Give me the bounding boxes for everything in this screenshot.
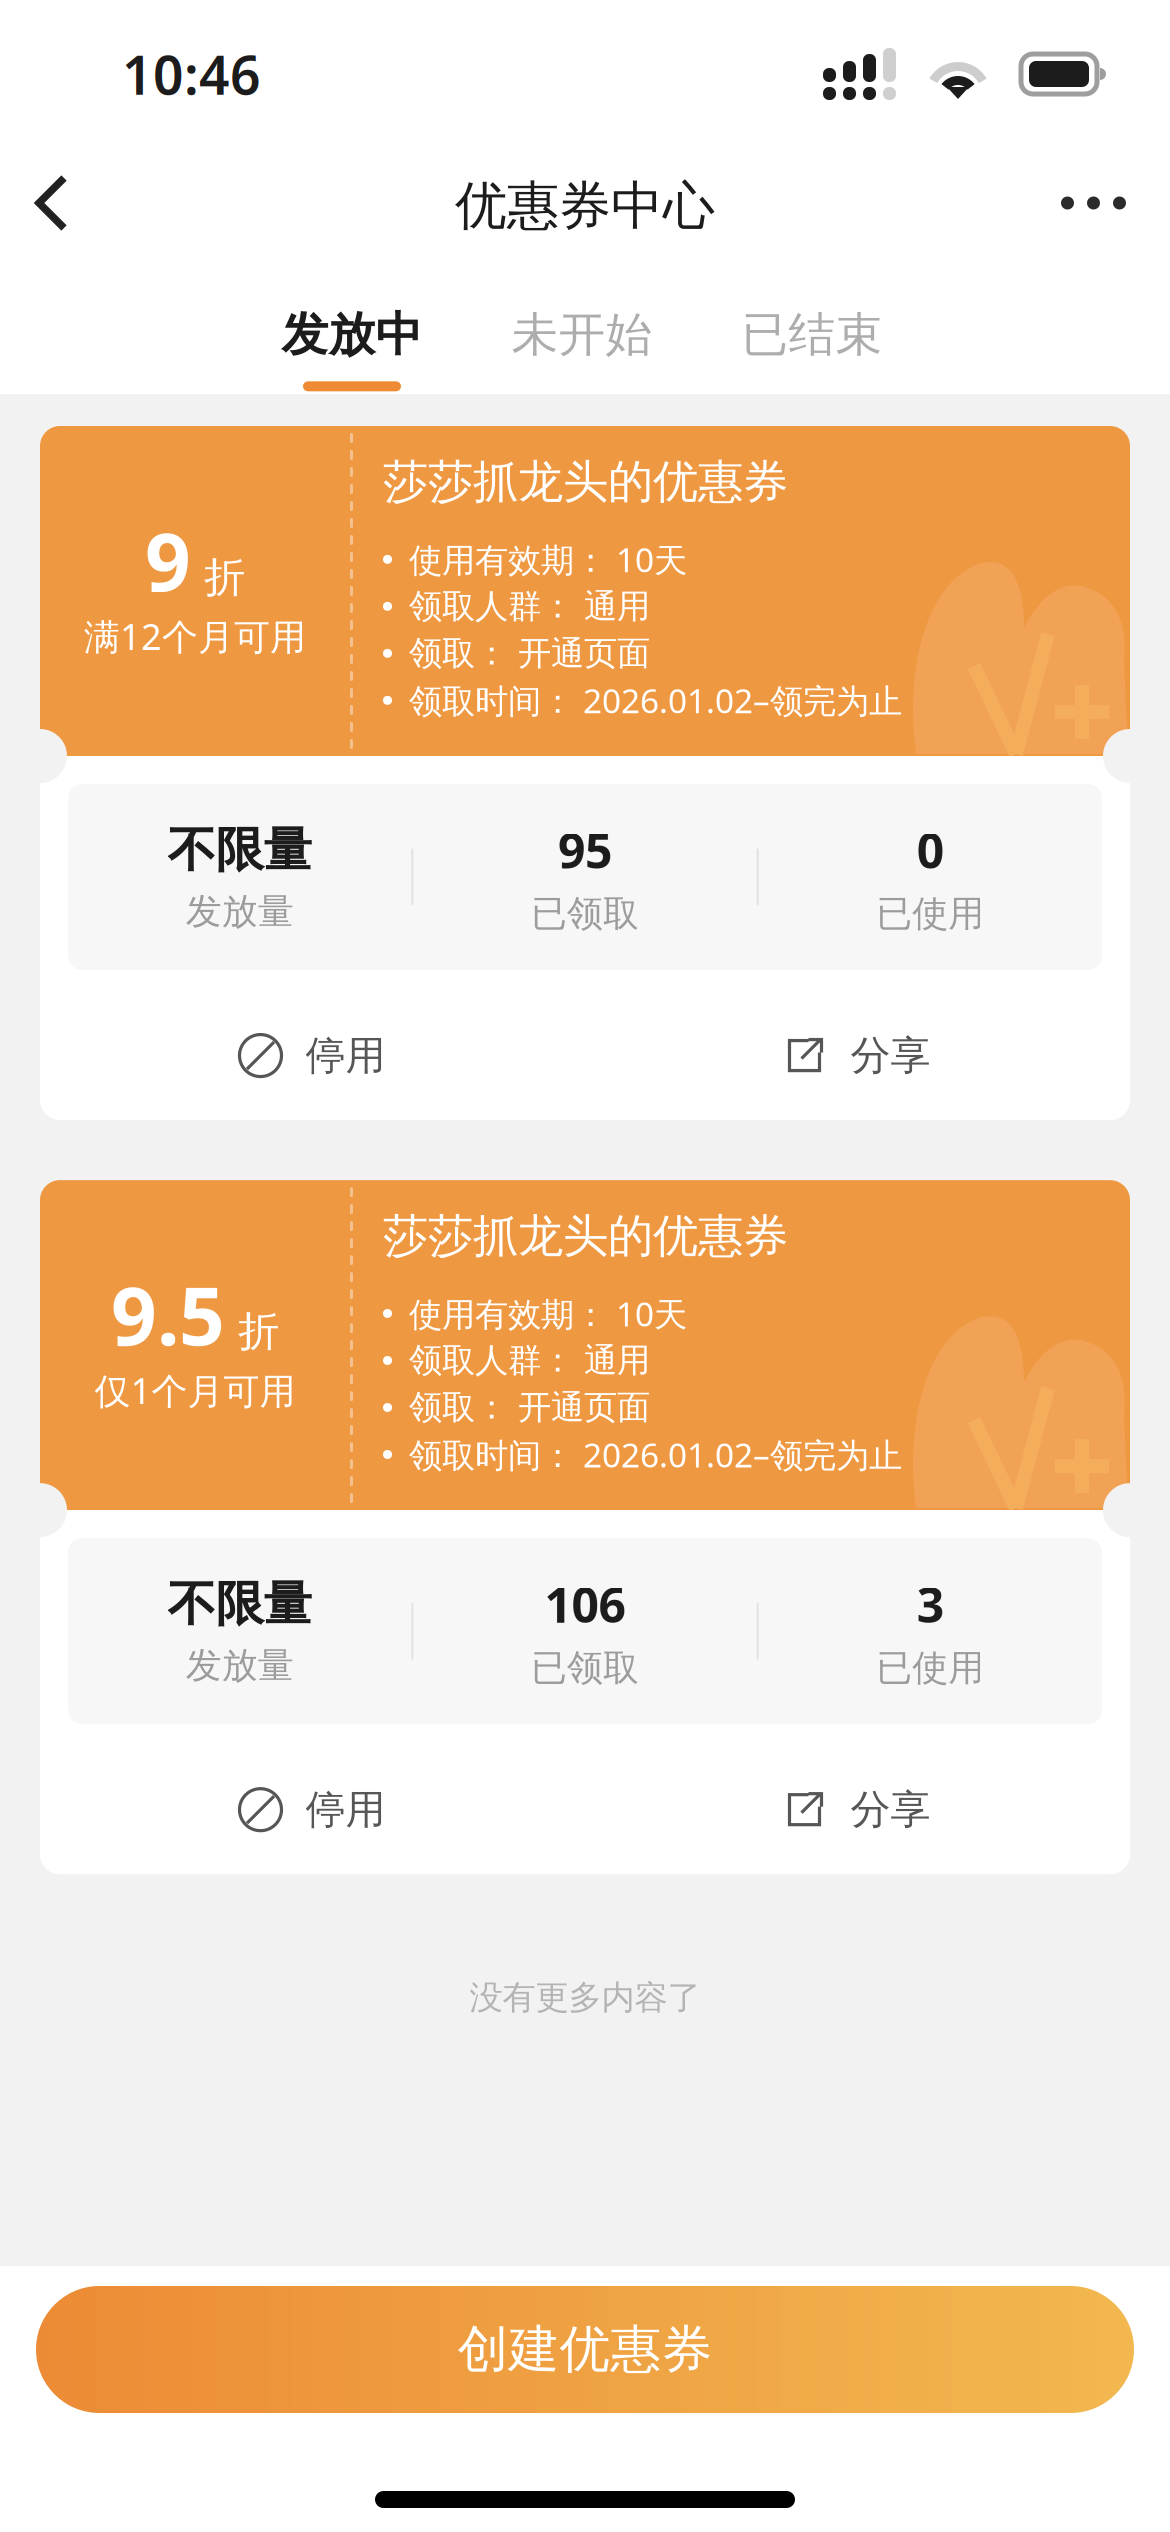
staticText: 已结束: [741, 306, 882, 363]
staticText: 领取人群： 通用: [409, 1340, 650, 1381]
button[interactable]: 未开始: [512, 270, 652, 394]
staticText: 已使用: [876, 1646, 984, 1690]
staticText: 已领取: [531, 892, 639, 936]
staticText: 发放量: [186, 1643, 294, 1688]
button[interactable]: 停用: [40, 1753, 585, 1866]
staticText: 仅1个月可用: [94, 1366, 295, 1414]
staticText: 分享: [850, 1031, 930, 1080]
staticText: 折: [238, 1306, 279, 1357]
button[interactable]: 分享: [585, 999, 1130, 1112]
button[interactable]: 分享: [585, 1753, 1130, 1866]
button[interactable]: More: [1017, 162, 1150, 243]
staticText: 满12个月可用: [84, 612, 306, 660]
staticText: 莎莎抓龙头的优惠券: [383, 1208, 788, 1264]
staticText: 发放量: [186, 889, 294, 934]
staticText: 创建优惠券: [457, 2318, 712, 2381]
staticText: 没有更多内容了: [469, 1977, 700, 2018]
staticText: 9.5: [111, 1261, 225, 1367]
staticText: 折: [204, 552, 245, 603]
staticText: 未开始: [511, 306, 652, 363]
staticText: 领取： 开通页面: [409, 633, 650, 674]
staticText: 使用有效期： 10天: [409, 1291, 687, 1336]
staticText: 停用: [305, 1785, 385, 1834]
staticText: 106: [544, 1572, 625, 1636]
button[interactable]: 发放中: [282, 270, 422, 394]
staticText: 9: [145, 507, 191, 613]
staticText: 已使用: [876, 892, 984, 936]
staticText: 不限量: [168, 820, 312, 879]
staticText: 莎莎抓龙头的优惠券: [383, 454, 788, 510]
staticText: 停用: [305, 1031, 385, 1080]
staticText: 已领取: [531, 1646, 639, 1690]
staticText: 分享: [850, 1785, 930, 1834]
staticText: 10:46: [122, 39, 261, 109]
staticText: 95: [558, 818, 612, 882]
staticText: 3: [917, 1572, 944, 1636]
staticText: 领取人群： 通用: [409, 586, 650, 627]
staticText: 不限量: [168, 1574, 312, 1633]
staticText: 领取时间： 2026.01.02–领完为止: [409, 1432, 902, 1477]
staticText: 领取： 开通页面: [409, 1387, 650, 1428]
staticText: 0: [917, 818, 944, 882]
staticText: 使用有效期： 10天: [409, 537, 687, 581]
button[interactable]: Back: [20, 146, 116, 260]
staticText: 优惠券中心: [455, 174, 715, 238]
button[interactable]: 创建优惠券: [36, 2286, 1134, 2413]
button[interactable]: 已结束: [742, 270, 882, 394]
button[interactable]: 停用: [40, 999, 585, 1112]
staticText: 领取时间： 2026.01.02–领完为止: [409, 678, 902, 722]
staticText: 发放中: [281, 306, 422, 363]
